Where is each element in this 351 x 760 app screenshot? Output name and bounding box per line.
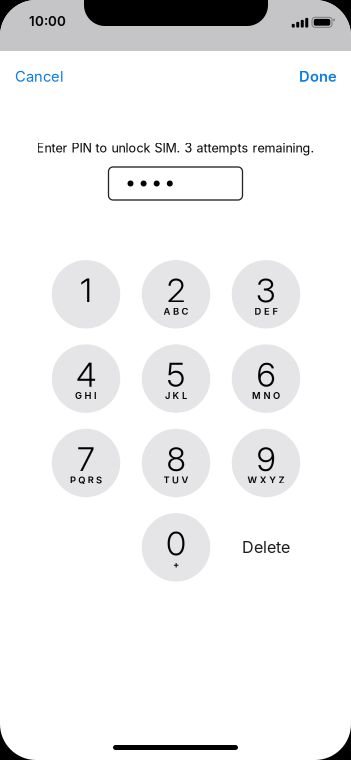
staticText: 0 xyxy=(166,523,186,563)
staticText: 2 xyxy=(166,270,185,310)
button[interactable]: 4 xyxy=(41,344,131,413)
staticText: 8 xyxy=(166,439,185,479)
staticText: T xyxy=(164,474,170,486)
staticText: 5 xyxy=(166,354,185,395)
staticText: Enter PIN to unlock SIM. 3 attempts rema… xyxy=(36,140,314,156)
staticText: Q xyxy=(78,474,85,486)
staticText: Delete xyxy=(242,538,290,557)
button[interactable]: 9 xyxy=(221,429,311,497)
staticText: F xyxy=(272,306,277,317)
staticText: D xyxy=(255,306,262,317)
staticText: 10:00 xyxy=(29,13,66,29)
staticText: S xyxy=(96,474,102,486)
staticText: 4 xyxy=(76,354,96,395)
button[interactable]: Delete xyxy=(224,513,308,581)
staticText: A xyxy=(164,306,171,317)
staticText: W xyxy=(247,474,257,486)
button[interactable]: 7 xyxy=(41,429,131,497)
button[interactable]: 5 xyxy=(131,344,221,413)
staticText: O xyxy=(273,390,280,401)
button[interactable]: Cancel xyxy=(0,51,74,102)
staticText: 9 xyxy=(256,439,275,479)
staticText: M xyxy=(252,390,261,401)
staticText: U xyxy=(172,474,179,486)
staticText: B xyxy=(173,306,179,317)
staticText: Cancel xyxy=(15,68,64,85)
staticText: + xyxy=(173,559,179,570)
button[interactable]: Done xyxy=(289,51,351,102)
button[interactable]: 2 xyxy=(131,260,221,329)
staticText: 6 xyxy=(256,354,275,395)
button[interactable]: 1 xyxy=(41,260,131,329)
staticText: X xyxy=(260,474,267,486)
staticText: J xyxy=(165,390,170,401)
staticText: P xyxy=(70,474,76,486)
staticText: I xyxy=(94,390,97,401)
staticText: Z xyxy=(279,474,285,486)
staticText: 7 xyxy=(77,439,95,479)
button[interactable]: 3 xyxy=(221,260,311,329)
staticText: C xyxy=(181,306,188,317)
staticText: L xyxy=(182,390,187,401)
staticText: 1 xyxy=(80,270,92,310)
button[interactable]: 8 xyxy=(131,429,221,497)
staticText: H xyxy=(84,390,91,401)
staticText: E xyxy=(264,306,270,317)
staticText: V xyxy=(181,474,188,486)
staticText: R xyxy=(88,474,94,486)
staticText: K xyxy=(172,390,179,401)
button[interactable]: 6 xyxy=(221,344,311,413)
staticText: 3 xyxy=(256,270,276,310)
button[interactable]: 0 xyxy=(131,513,221,581)
staticText: Done xyxy=(299,68,337,85)
staticText: G xyxy=(75,390,82,401)
staticText: N xyxy=(263,390,270,401)
staticText: Y xyxy=(269,474,276,486)
